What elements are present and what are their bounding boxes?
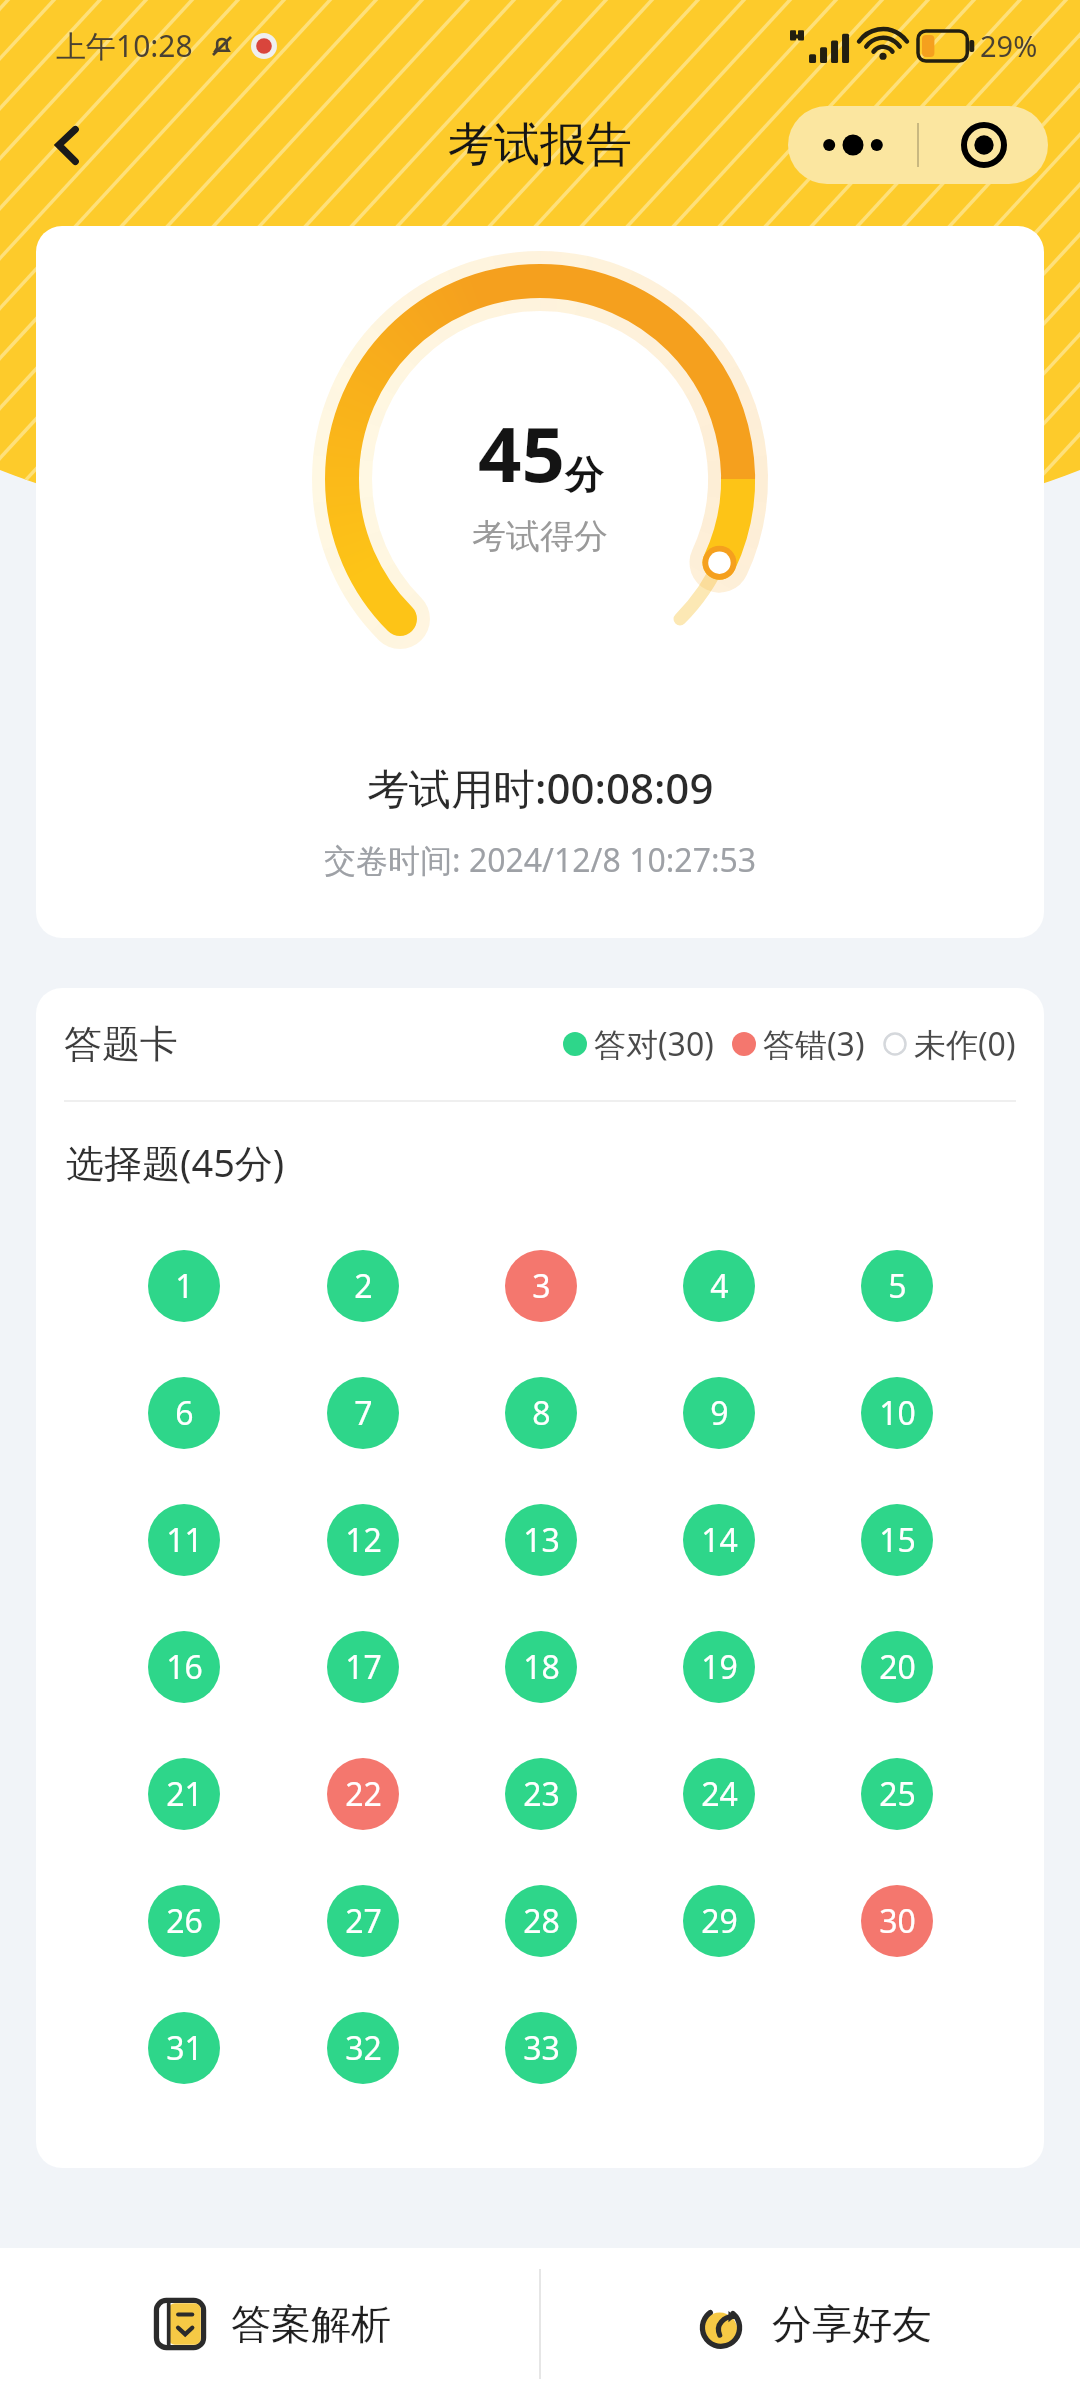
button[interactable]: 8 — [505, 1377, 577, 1449]
button[interactable]: 28 — [505, 1885, 577, 1957]
staticText: 16 — [166, 1645, 203, 1689]
staticText: 4 — [710, 1264, 729, 1308]
button[interactable]: 31 — [148, 2012, 220, 2084]
staticText: 18 — [523, 1645, 560, 1689]
staticText: 31 — [166, 2026, 203, 2070]
staticText: 25 — [879, 1772, 916, 1816]
staticText: 29 — [701, 1899, 738, 1943]
button[interactable]: 17 — [327, 1631, 399, 1703]
staticText: 21 — [166, 1772, 203, 1816]
staticText: 答题卡 — [64, 1020, 178, 1068]
button[interactable]: 11 — [148, 1504, 220, 1576]
staticText: 26 — [166, 1899, 203, 1943]
button[interactable]: 25 — [861, 1758, 933, 1830]
staticText: 上午10:28 — [56, 25, 193, 66]
staticText: 交卷时间: 2024/12/8 10:27:53 — [324, 838, 757, 882]
button[interactable]: 21 — [148, 1758, 220, 1830]
button[interactable]: 4 — [683, 1250, 755, 1322]
button[interactable]: 16 — [148, 1631, 220, 1703]
staticText: 14 — [701, 1518, 738, 1562]
staticText: 15 — [879, 1518, 916, 1562]
staticText: 20 — [879, 1645, 916, 1689]
button[interactable]: 答案解析 — [0, 2248, 539, 2400]
button[interactable]: 2 — [327, 1250, 399, 1322]
button[interactable]: 26 — [148, 1885, 220, 1957]
button[interactable]: 9 — [683, 1377, 755, 1449]
button[interactable]: 3 — [505, 1250, 577, 1322]
staticText: 9 — [710, 1391, 729, 1435]
staticText: 30 — [879, 1899, 916, 1943]
staticText: 24 — [701, 1772, 738, 1816]
button[interactable]: 7 — [327, 1377, 399, 1449]
button[interactable]: 29 — [683, 1885, 755, 1957]
button[interactable]: 30 — [861, 1885, 933, 1957]
staticText: 45 — [478, 401, 565, 505]
staticText: 未作(0) — [914, 1022, 1016, 1066]
staticText: 答案解析 — [231, 2299, 391, 2349]
staticText: 考试得分 — [472, 515, 608, 558]
staticText: 考试用时:00:08:09 — [367, 759, 714, 816]
staticText: 分享好友 — [772, 2299, 932, 2349]
staticText: 7 — [354, 1391, 373, 1435]
staticText: 22 — [345, 1772, 382, 1816]
button[interactable]: 分享好友 — [541, 2248, 1080, 2400]
staticText: 23 — [523, 1772, 560, 1816]
button[interactable]: 12 — [327, 1504, 399, 1576]
button[interactable]: 15 — [861, 1504, 933, 1576]
staticText: 11 — [166, 1518, 203, 1562]
staticText: 1 — [175, 1264, 194, 1308]
staticText: 3 — [532, 1264, 551, 1308]
staticText: 考试报告 — [448, 116, 632, 174]
button[interactable]: Menu and close — [788, 106, 1048, 184]
button[interactable]: 27 — [327, 1885, 399, 1957]
button[interactable]: 6 — [148, 1377, 220, 1449]
staticText: 答错(3) — [763, 1022, 865, 1066]
button[interactable]: 32 — [327, 2012, 399, 2084]
button[interactable]: 13 — [505, 1504, 577, 1576]
staticText: 33 — [523, 2026, 560, 2070]
button[interactable]: 22 — [327, 1758, 399, 1830]
staticText: 10 — [879, 1391, 916, 1435]
staticText: 17 — [345, 1645, 382, 1689]
staticText: 19 — [701, 1645, 738, 1689]
staticText: 27 — [345, 1899, 382, 1943]
staticText: 6 — [175, 1391, 194, 1435]
button[interactable]: 1 — [148, 1250, 220, 1322]
button[interactable]: 10 — [861, 1377, 933, 1449]
button[interactable]: 14 — [683, 1504, 755, 1576]
button[interactable]: 19 — [683, 1631, 755, 1703]
button[interactable]: 20 — [861, 1631, 933, 1703]
button[interactable]: Back — [26, 103, 110, 187]
button[interactable]: 33 — [505, 2012, 577, 2084]
staticText: 分 — [565, 451, 603, 499]
staticText: 答对(30) — [594, 1022, 714, 1066]
button[interactable]: 18 — [505, 1631, 577, 1703]
staticText: 29% — [980, 26, 1038, 65]
staticText: 32 — [345, 2026, 382, 2070]
button[interactable]: 5 — [861, 1250, 933, 1322]
staticText: 2 — [354, 1264, 373, 1308]
button[interactable]: 24 — [683, 1758, 755, 1830]
staticText: 选择题(45分) — [66, 1136, 285, 1188]
staticText: 5 — [888, 1264, 907, 1308]
staticText: 8 — [532, 1391, 551, 1435]
staticText: 12 — [345, 1518, 382, 1562]
button[interactable]: 23 — [505, 1758, 577, 1830]
staticText: 13 — [523, 1518, 560, 1562]
staticText: 28 — [523, 1899, 560, 1943]
